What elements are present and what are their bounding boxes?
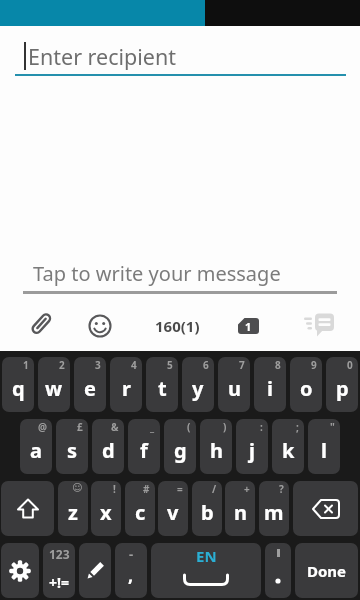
button[interactable]: 3	[74, 357, 106, 412]
staticText: w	[45, 375, 63, 402]
staticText: 8	[275, 358, 281, 372]
button[interactable]	[1, 481, 54, 536]
staticText: +	[244, 482, 250, 496]
staticText: /	[212, 482, 217, 496]
button[interactable]	[265, 543, 291, 598]
button[interactable]: /	[192, 481, 222, 536]
staticText: j	[249, 437, 255, 464]
button[interactable]: +	[225, 481, 255, 536]
staticText: ☺	[72, 482, 83, 494]
staticText: &	[111, 420, 119, 434]
button[interactable]: 1	[2, 357, 34, 412]
button[interactable]: 9	[290, 357, 322, 412]
staticText: _	[150, 420, 155, 434]
staticText: y	[192, 375, 204, 402]
staticText: 0	[347, 358, 353, 372]
staticText: a	[30, 437, 42, 464]
staticText: r	[122, 375, 131, 402]
button[interactable]: -	[115, 543, 147, 598]
staticText: 123	[49, 546, 70, 562]
staticText: e	[84, 375, 96, 402]
button[interactable]	[303, 312, 339, 338]
button[interactable]: )	[200, 419, 232, 474]
staticText: f	[140, 437, 148, 464]
button[interactable]: £	[56, 419, 88, 474]
staticText: ;	[296, 420, 299, 434]
button[interactable]: 123	[43, 543, 75, 598]
staticText: =	[177, 482, 183, 496]
staticText: u	[228, 375, 241, 402]
staticText: l	[321, 437, 327, 464]
staticText: 1	[245, 319, 252, 334]
button[interactable]: 1	[238, 318, 259, 334]
button[interactable]: ?	[259, 481, 289, 536]
button[interactable]: 8	[254, 357, 286, 412]
button[interactable]: :	[236, 419, 268, 474]
staticText: (	[187, 420, 191, 434]
staticText: k	[282, 437, 295, 464]
staticText: t	[158, 375, 167, 402]
button[interactable]: (	[164, 419, 196, 474]
button[interactable]: EN	[151, 543, 261, 598]
staticText: b	[201, 499, 214, 526]
staticText: 160(1)	[155, 316, 200, 336]
staticText: 9	[311, 358, 317, 372]
button[interactable]: 2	[38, 357, 70, 412]
staticText: 6	[203, 358, 209, 372]
button[interactable]: 4	[110, 357, 142, 412]
button[interactable]	[0, 26, 360, 78]
button[interactable]	[1, 543, 39, 598]
staticText: z	[68, 499, 78, 526]
button[interactable]	[88, 314, 112, 338]
staticText: Tap to write your message	[33, 260, 281, 287]
button[interactable]: 0	[326, 357, 358, 412]
button[interactable]: 7	[218, 357, 250, 412]
staticText: £	[77, 420, 83, 434]
staticText: q	[12, 375, 25, 402]
staticText: Enter recipient	[28, 42, 176, 71]
staticText: 5	[167, 358, 173, 372]
staticText: Done	[307, 561, 347, 581]
staticText: -	[129, 545, 134, 563]
button[interactable]: =	[158, 481, 188, 536]
button[interactable]: ☺	[58, 481, 88, 536]
staticText: )	[223, 420, 227, 434]
button[interactable]	[79, 543, 111, 598]
button[interactable]: Done	[295, 543, 358, 598]
staticText: m	[264, 499, 284, 526]
button[interactable]: 5	[146, 357, 178, 412]
button[interactable]: @	[20, 419, 52, 474]
staticText: s	[67, 437, 78, 464]
staticText: :	[260, 420, 263, 434]
staticText: g	[174, 437, 187, 464]
button[interactable]: #	[125, 481, 155, 536]
button[interactable]: &	[92, 419, 124, 474]
staticText: #	[143, 482, 150, 496]
staticText: +!=	[49, 573, 69, 592]
staticText: ?	[279, 482, 284, 496]
button[interactable]: _	[128, 419, 160, 474]
staticText: 3	[95, 358, 101, 372]
staticText: n	[234, 499, 247, 526]
staticText: 1	[23, 358, 29, 372]
staticText: EN	[196, 546, 217, 566]
button[interactable]: !	[91, 481, 121, 536]
staticText: !	[113, 482, 116, 496]
staticText: "	[330, 420, 335, 434]
staticText: i	[267, 375, 273, 402]
button[interactable]	[27, 309, 55, 339]
button[interactable]	[0, 248, 360, 296]
staticText: c	[135, 499, 146, 526]
staticText: 4	[131, 358, 137, 372]
staticText: 2	[59, 358, 65, 372]
staticText: d	[102, 437, 115, 464]
staticText: o	[300, 375, 313, 402]
staticText: x	[100, 499, 112, 526]
staticText: ,	[128, 563, 134, 588]
button[interactable]: 6	[182, 357, 214, 412]
button[interactable]	[293, 481, 358, 536]
staticText: v	[167, 499, 179, 526]
button[interactable]: "	[308, 419, 340, 474]
button[interactable]: ;	[272, 419, 304, 474]
staticText: 7	[239, 358, 245, 372]
